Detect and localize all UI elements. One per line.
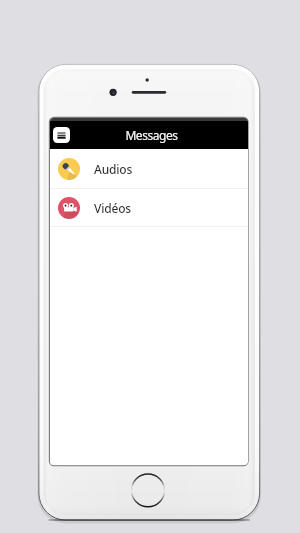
button[interactable]: Vidéos [50,189,248,226]
button[interactable]: Open navigation menu [53,127,70,143]
staticText: Audios [94,161,133,177]
staticText: Vidéos [94,200,131,216]
button[interactable]: Audios [50,149,248,188]
staticText: Messages [125,127,178,143]
